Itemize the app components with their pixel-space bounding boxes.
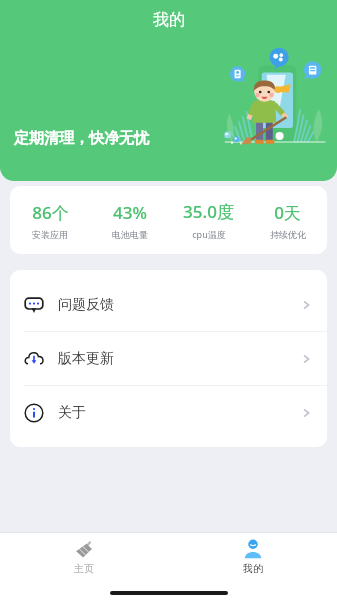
staticText: 0天	[274, 201, 301, 224]
other: 我的	[242, 539, 264, 561]
button[interactable]: 关于	[10, 386, 327, 439]
staticText: 关于	[58, 404, 86, 422]
staticText: 安装应用	[32, 229, 68, 240]
staticText: 86个	[32, 201, 69, 224]
staticText: 定期清理，快净无忧	[14, 129, 149, 148]
other: 主页	[73, 539, 95, 561]
staticText: 主页	[74, 562, 94, 575]
staticText: cpu温度	[192, 228, 226, 240]
button[interactable]: 主页	[0, 533, 168, 586]
staticText: 我的	[243, 562, 263, 575]
staticText: 我的	[153, 10, 185, 30]
staticText: 35.0度	[183, 200, 234, 223]
staticText: 版本更新	[58, 350, 114, 368]
staticText: 43%	[113, 201, 147, 224]
button[interactable]: 我的	[168, 533, 337, 586]
button[interactable]: 问题反馈	[10, 278, 327, 331]
staticText: 问题反馈	[58, 296, 114, 314]
button[interactable]: 版本更新	[10, 332, 327, 385]
staticText: 持续优化	[270, 229, 306, 240]
staticText: 电池电量	[112, 229, 148, 240]
